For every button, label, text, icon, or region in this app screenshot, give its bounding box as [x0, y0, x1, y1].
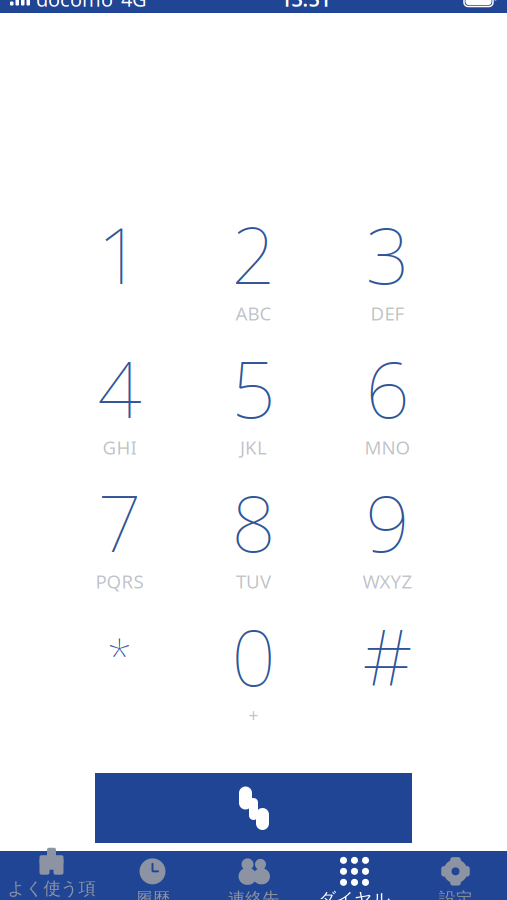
staticText: 設定: [438, 888, 472, 900]
button[interactable]: 6: [320, 329, 454, 463]
staticText: 4: [97, 337, 141, 439]
staticText: よく使う項目: [7, 878, 95, 900]
staticText: *: [107, 626, 132, 686]
staticText: docomo: [36, 0, 113, 12]
staticText: WXYZ: [362, 569, 412, 594]
staticText: +: [248, 704, 258, 727]
button[interactable]: Call: [95, 773, 412, 843]
staticText: 1: [97, 203, 141, 305]
staticText: MNO: [364, 435, 410, 460]
button[interactable]: #: [320, 597, 454, 731]
button[interactable]: 7: [52, 463, 186, 597]
button[interactable]: 5: [186, 329, 320, 463]
button[interactable]: 2: [186, 195, 320, 329]
staticText: 3: [365, 203, 409, 305]
staticText: 9: [365, 471, 409, 573]
button[interactable]: 4: [52, 329, 186, 463]
staticText: JKL: [240, 435, 267, 460]
button[interactable]: 設定: [405, 851, 506, 900]
button[interactable]: 連絡先: [203, 851, 304, 900]
staticText: 4G: [121, 0, 147, 12]
button[interactable]: *: [52, 597, 186, 731]
button[interactable]: 1: [52, 195, 186, 329]
staticText: 履歴: [135, 888, 169, 900]
staticText: #: [362, 605, 412, 707]
staticText: 6: [365, 337, 409, 439]
button[interactable]: よく使う項目: [1, 851, 102, 900]
staticText: 5: [231, 337, 275, 439]
staticText: TUV: [236, 569, 271, 594]
staticText: 8: [231, 471, 275, 573]
staticText: 2: [231, 203, 275, 305]
staticText: 0: [231, 605, 275, 707]
button[interactable]: ダイヤル: [304, 851, 405, 900]
staticText: ダイヤル: [318, 888, 390, 900]
button[interactable]: 3: [320, 195, 454, 329]
button[interactable]: 履歴: [102, 851, 203, 900]
staticText: DEF: [370, 301, 404, 326]
button[interactable]: 0: [186, 597, 320, 731]
staticText: 7: [97, 471, 141, 573]
staticText: ABC: [235, 301, 271, 326]
staticText: 13:51: [280, 0, 330, 12]
button[interactable]: 9: [320, 463, 454, 597]
button[interactable]: 8: [186, 463, 320, 597]
staticText: PQRS: [95, 569, 143, 594]
staticText: GHI: [102, 435, 136, 460]
staticText: 連絡先: [228, 888, 279, 900]
